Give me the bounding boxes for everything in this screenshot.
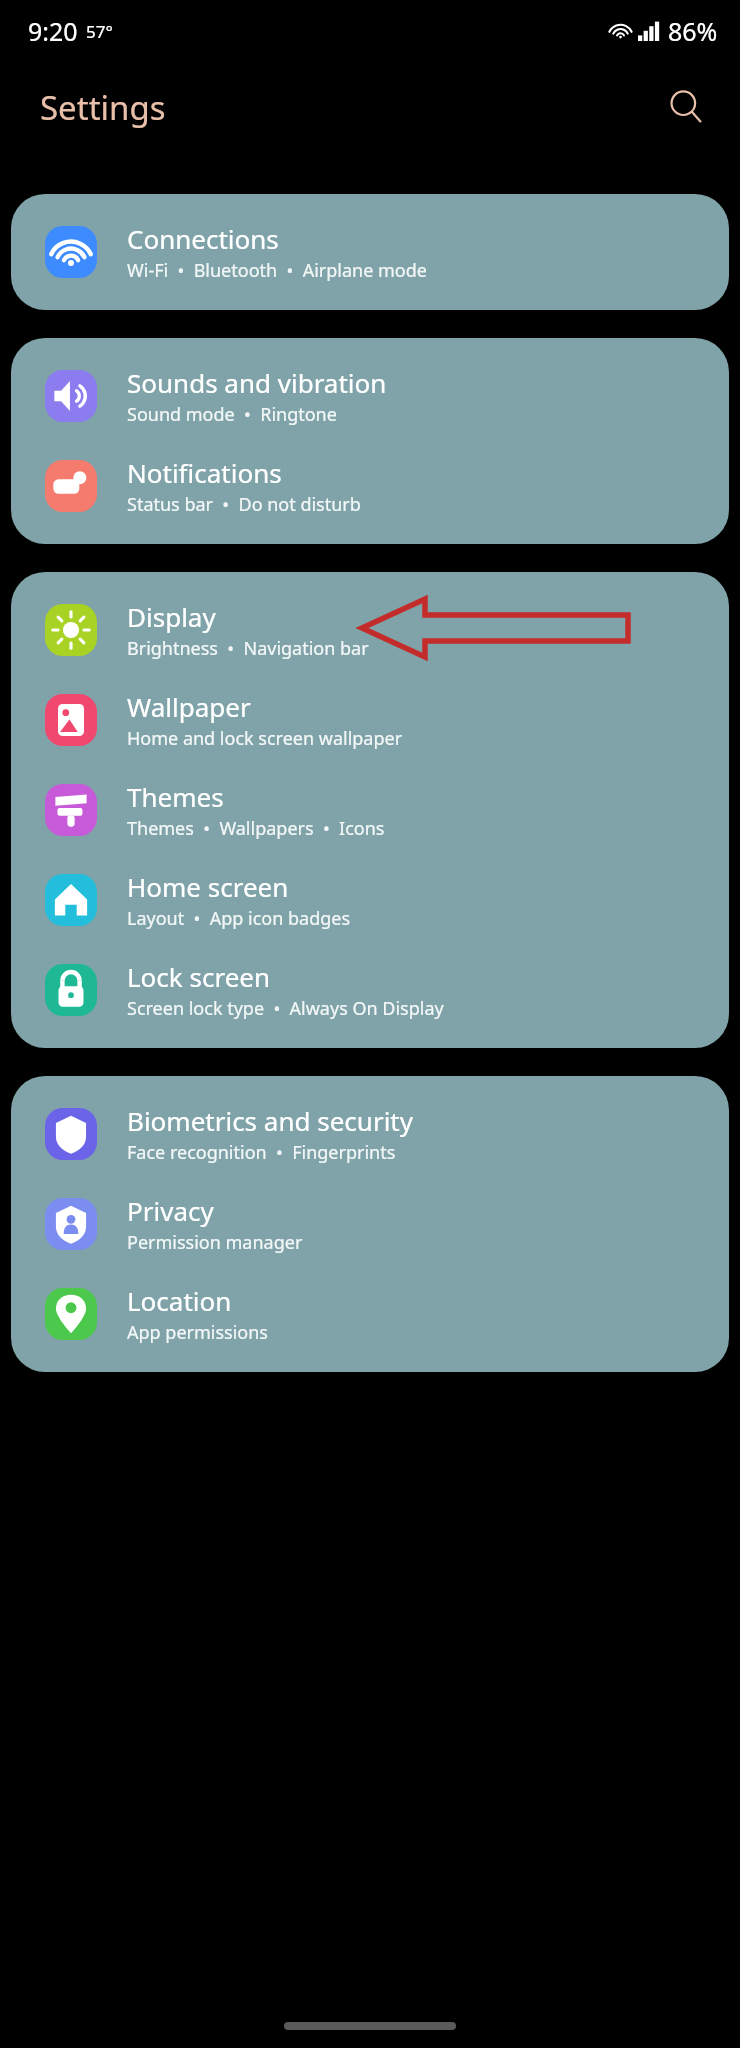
staticText: 57° [86,20,113,43]
button[interactable]: Privacy [11,1179,729,1269]
staticText: Settings [40,85,166,130]
staticText: Biometrics and security [127,1103,414,1138]
staticText: Location [127,1283,232,1318]
staticText: Screen lock type • Always On Display [127,996,444,1021]
staticText: Connections [127,221,279,256]
staticText: Home screen [127,869,289,904]
staticText: Notifications [127,455,282,490]
staticText: Brightness • Navigation bar [127,636,369,661]
button[interactable]: Notifications [11,441,729,544]
button[interactable]: Home screen [11,855,729,945]
staticText: Themes • Wallpapers • Icons [127,816,385,841]
staticText: Sounds and vibration [127,365,387,400]
staticText: Status bar • Do not disturb [127,492,361,517]
staticText: Home and lock screen wallpaper [127,726,403,751]
button[interactable]: Connections [11,194,729,310]
button[interactable]: Lock screen [11,945,729,1048]
button[interactable]: Search [658,79,714,135]
staticText: Themes [127,779,224,814]
button[interactable]: Location [11,1269,729,1372]
button[interactable]: Display [11,572,729,675]
staticText: Permission manager [127,1230,303,1255]
staticText: Privacy [127,1193,214,1228]
staticText: Display [127,599,216,634]
staticText: Lock screen [127,959,271,994]
staticText: Face recognition • Fingerprints [127,1140,396,1165]
staticText: 9:20 [28,14,78,48]
button[interactable]: Themes [11,765,729,855]
button[interactable]: Biometrics and security [11,1076,729,1179]
staticText: Wi-Fi • Bluetooth • Airplane mode [127,258,427,283]
button[interactable]: Sounds and vibration [11,338,729,441]
staticText: Sound mode • Ringtone [127,402,337,427]
button[interactable]: Wallpaper [11,675,729,765]
staticText: Wallpaper [127,689,251,724]
staticText: 86% [668,14,718,48]
staticText: App permissions [127,1320,268,1345]
staticText: Layout • App icon badges [127,906,351,931]
